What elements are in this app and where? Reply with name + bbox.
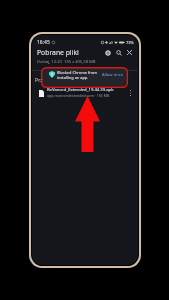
- staticText: Dzisiaj, 12:23 165 z 405,38 MB: [37, 59, 96, 65]
- button[interactable]: Settings: [102, 47, 113, 58]
- button[interactable]: Blocked Chrome from installing an app.: [43, 68, 126, 86]
- staticText: Prz: [35, 76, 43, 83]
- button[interactable]: More options: [126, 88, 135, 97]
- staticText: app.revancedextended.com · 165 MB: [47, 93, 110, 98]
- staticText: Pobrane pliki: [37, 48, 79, 57]
- button[interactable]: Allow once: [102, 72, 124, 78]
- staticText: Blocked Chrome from installing an app.: [57, 70, 97, 80]
- button[interactable]: ReVanced_Extended_19.44.39.apk: [32, 86, 138, 99]
- staticText: Allow once: [102, 72, 124, 78]
- staticText: 73%: [126, 40, 134, 45]
- button[interactable]: Close: [124, 47, 135, 58]
- button[interactable]: Search: [113, 47, 124, 58]
- staticText: 16:45: [37, 39, 50, 46]
- staticText: ReVanced_Extended_19.44.39.apk: [47, 87, 114, 93]
